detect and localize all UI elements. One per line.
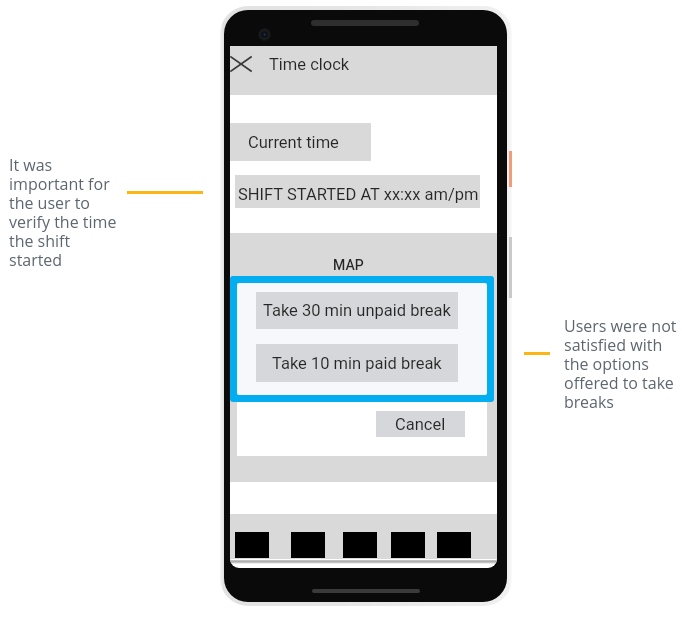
staticText: Take 10 min paid break bbox=[272, 354, 442, 373]
staticText: Take 30 min unpaid break bbox=[263, 301, 451, 320]
staticText: SHIFT STARTED AT xx:xx am/pm bbox=[238, 185, 479, 204]
button[interactable]: Cancel bbox=[376, 411, 465, 437]
staticText: It was important for the user to verify … bbox=[9, 154, 117, 270]
staticText: Time clock bbox=[269, 55, 350, 74]
staticText: Current time bbox=[248, 133, 339, 152]
button[interactable]: Current time bbox=[230, 123, 371, 161]
button[interactable]: Take 10 min paid break bbox=[256, 344, 458, 382]
staticText: Users were not satisfied with the option… bbox=[564, 315, 680, 412]
button[interactable]: Close bbox=[230, 46, 262, 86]
staticText: Cancel bbox=[395, 415, 446, 434]
button[interactable]: Take 30 min unpaid break bbox=[256, 292, 458, 329]
staticText: MAP bbox=[333, 257, 364, 273]
